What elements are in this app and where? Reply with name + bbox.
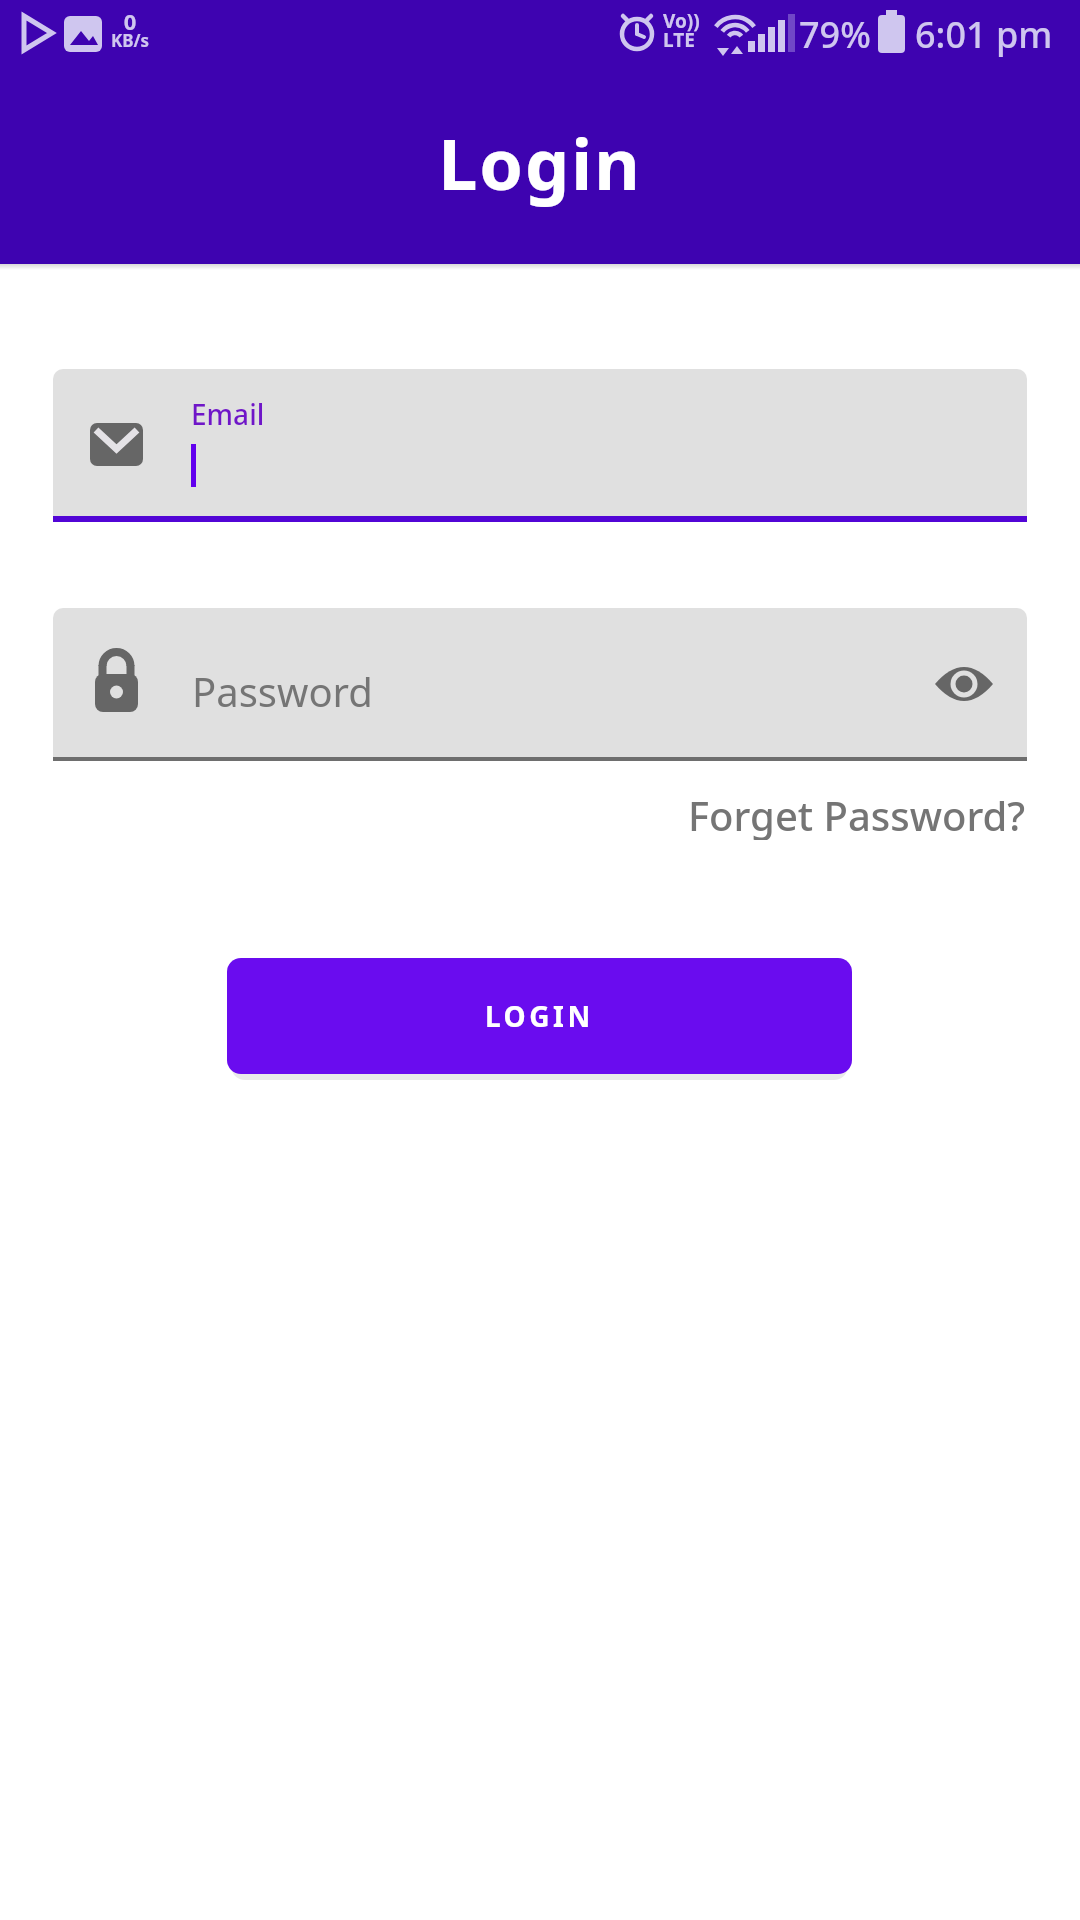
button[interactable]: LOGIN — [227, 958, 852, 1074]
staticText: Forget Password? — [688, 788, 1026, 840]
staticText: Vo)) — [663, 8, 700, 34]
staticText: LOGIN — [485, 997, 594, 1035]
staticText: Password — [192, 664, 373, 718]
staticText: 79% — [799, 10, 871, 59]
staticText: LTE — [663, 27, 695, 53]
staticText: 6:01 pm — [915, 10, 1053, 59]
staticText: Login — [0, 115, 1080, 210]
staticText: Email — [191, 395, 265, 433]
staticText: KB/s — [104, 29, 156, 51]
button[interactable]: Password — [53, 608, 1027, 761]
button[interactable]: Forget Password? — [520, 788, 1030, 840]
button[interactable] — [935, 664, 993, 704]
button[interactable]: Email — [53, 369, 1027, 522]
staticText: 0 — [108, 6, 152, 30]
